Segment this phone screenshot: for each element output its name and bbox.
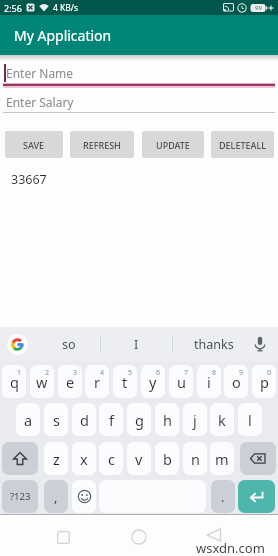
staticText: z bbox=[53, 449, 60, 469]
button[interactable]: I bbox=[101, 327, 172, 361]
staticText: s bbox=[53, 410, 60, 430]
staticText: k bbox=[218, 410, 226, 430]
staticText: r bbox=[94, 372, 100, 392]
button[interactable]: s bbox=[44, 403, 68, 436]
staticText: Enter Salary bbox=[6, 94, 74, 110]
button[interactable]: so bbox=[38, 327, 100, 361]
staticText: d bbox=[80, 410, 89, 430]
button[interactable]: u bbox=[169, 365, 193, 398]
staticText: p bbox=[260, 372, 269, 392]
button[interactable]: z bbox=[44, 442, 68, 475]
button[interactable]: f bbox=[99, 403, 123, 436]
staticText: UPDATE bbox=[156, 139, 190, 151]
staticText: 99 bbox=[255, 4, 262, 12]
button[interactable]: REFRESH bbox=[70, 131, 134, 158]
staticText: I bbox=[134, 336, 139, 353]
button[interactable]: r bbox=[85, 365, 109, 398]
staticText: 5 bbox=[128, 368, 133, 378]
button[interactable]: l bbox=[238, 403, 262, 436]
staticText: ?123 bbox=[10, 490, 31, 503]
button[interactable]: e bbox=[58, 365, 82, 398]
button[interactable]: o bbox=[224, 365, 248, 398]
button[interactable]: g bbox=[127, 403, 151, 436]
button[interactable] bbox=[238, 480, 275, 513]
staticText: 6 bbox=[156, 368, 161, 378]
staticText: SAVE bbox=[23, 139, 45, 151]
staticText: h bbox=[163, 410, 172, 430]
button[interactable]: p bbox=[252, 365, 276, 398]
staticText: i bbox=[207, 372, 211, 392]
staticText: 4 KB/s bbox=[53, 2, 79, 14]
staticText: Enter Name bbox=[6, 65, 74, 81]
staticText: w bbox=[36, 372, 48, 392]
staticText: o bbox=[232, 372, 241, 392]
button[interactable]: d bbox=[72, 403, 96, 436]
button[interactable]: Enter Salary bbox=[0, 93, 278, 111]
staticText: c bbox=[108, 449, 115, 469]
button[interactable]: UPDATE bbox=[142, 131, 204, 158]
staticText: 0 bbox=[267, 368, 272, 378]
button[interactable]: k bbox=[210, 403, 234, 436]
button[interactable] bbox=[57, 531, 70, 544]
staticText: 2:56 bbox=[4, 2, 22, 14]
button[interactable] bbox=[7, 334, 28, 355]
staticText: 8 bbox=[212, 368, 217, 378]
button[interactable] bbox=[131, 529, 147, 545]
staticText: v bbox=[135, 449, 143, 469]
button[interactable]: t bbox=[113, 365, 137, 398]
button[interactable]: Enter Name bbox=[0, 60, 278, 86]
button[interactable]: y bbox=[141, 365, 165, 398]
staticText: x bbox=[80, 449, 88, 469]
button[interactable]: x bbox=[72, 442, 96, 475]
button[interactable]: v bbox=[127, 442, 151, 475]
button[interactable] bbox=[252, 336, 268, 352]
staticText: DELETEALL bbox=[219, 139, 266, 151]
button[interactable] bbox=[240, 442, 276, 475]
staticText: 2 bbox=[45, 368, 50, 378]
button[interactable]: DELETEALL bbox=[211, 131, 274, 158]
staticText: b bbox=[163, 449, 172, 469]
button[interactable]: . bbox=[211, 480, 235, 513]
button[interactable]: j bbox=[183, 403, 207, 436]
button[interactable]: m bbox=[210, 442, 234, 475]
button[interactable]: ?123 bbox=[2, 480, 38, 513]
staticText: y bbox=[149, 372, 157, 392]
staticText: wsxdn.com bbox=[196, 539, 265, 556]
staticText: , bbox=[54, 488, 58, 506]
staticText: 7 bbox=[184, 368, 189, 378]
button[interactable]: thanks bbox=[173, 327, 255, 361]
staticText: so bbox=[62, 336, 76, 353]
staticText: thanks bbox=[194, 336, 234, 353]
staticText: g bbox=[135, 410, 144, 430]
staticText: m bbox=[215, 449, 229, 469]
button[interactable] bbox=[2, 442, 38, 475]
button[interactable]: q bbox=[2, 365, 26, 398]
staticText: 33667 bbox=[11, 171, 47, 188]
staticText: t bbox=[122, 372, 128, 392]
staticText: f bbox=[109, 410, 114, 430]
button[interactable]: h bbox=[155, 403, 179, 436]
button[interactable]: c bbox=[99, 442, 123, 475]
staticText: 9 bbox=[239, 368, 244, 378]
button[interactable]: n bbox=[183, 442, 207, 475]
button[interactable]: a bbox=[16, 403, 40, 436]
staticText: a bbox=[24, 410, 33, 430]
staticText: e bbox=[66, 372, 75, 392]
staticText: 1 bbox=[17, 368, 22, 378]
staticText: 3 bbox=[73, 368, 78, 378]
button[interactable]: w bbox=[30, 365, 54, 398]
button[interactable] bbox=[206, 528, 222, 542]
staticText: u bbox=[177, 372, 186, 392]
button[interactable]: b bbox=[155, 442, 179, 475]
staticText: 4 bbox=[100, 368, 105, 378]
button[interactable]: , bbox=[44, 480, 68, 513]
staticText: j bbox=[193, 410, 197, 430]
button[interactable]: i bbox=[197, 365, 221, 398]
staticText: n bbox=[191, 449, 200, 469]
staticText: REFRESH bbox=[83, 139, 121, 151]
button[interactable]: SAVE bbox=[5, 131, 63, 158]
staticText: l bbox=[248, 410, 252, 430]
staticText: My Application bbox=[14, 26, 112, 45]
button[interactable] bbox=[72, 480, 96, 513]
